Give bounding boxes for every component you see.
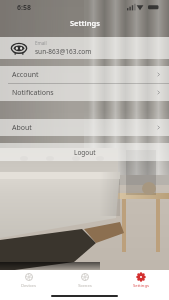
staticText: 6:58 [17,3,31,13]
staticText: Settings [70,18,100,28]
button[interactable]: Settings [113,270,169,291]
button[interactable]: Email [0,37,169,59]
staticText: Account [12,70,39,80]
button[interactable]: Account [0,66,169,83]
staticText: Settings [133,283,149,289]
button[interactable]: Scenes [57,270,113,291]
staticText: Email [35,40,47,46]
staticText: Notifications [12,88,54,98]
staticText: Scenes [78,283,92,289]
staticText: Logout [74,148,96,157]
button[interactable]: Notifications [0,84,169,101]
button[interactable]: Devices [0,270,57,291]
button[interactable]: Logout [0,143,169,161]
staticText: sun-863@163.com [35,47,92,56]
staticText: Devices [21,283,36,289]
staticText: About [12,123,32,133]
button[interactable]: About [0,119,169,136]
